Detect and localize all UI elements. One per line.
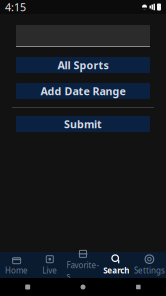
button[interactable]: Search xyxy=(100,252,133,278)
button[interactable]: Add Date Range xyxy=(16,83,150,99)
button[interactable]: All Sports xyxy=(16,57,150,73)
staticText: Submit xyxy=(64,117,102,131)
staticText: 4:15 xyxy=(5,0,26,14)
staticText: Settings xyxy=(134,265,165,276)
button[interactable]: Submit xyxy=(16,116,150,132)
button[interactable]: Home xyxy=(0,252,33,278)
button[interactable]: Live xyxy=(33,252,66,278)
button[interactable]: Back xyxy=(0,278,55,296)
button[interactable]: Home xyxy=(55,278,111,296)
staticText: Search xyxy=(103,265,129,276)
staticText: Favorites xyxy=(66,260,99,281)
staticText: Home xyxy=(5,265,28,276)
button[interactable]: Settings xyxy=(133,252,166,278)
staticText: Live xyxy=(42,265,57,276)
staticText: Add Date Range xyxy=(40,84,125,98)
button[interactable]: Favorites xyxy=(66,252,100,278)
button[interactable]: Recent apps xyxy=(111,278,166,296)
staticText: All Sports xyxy=(57,58,108,72)
